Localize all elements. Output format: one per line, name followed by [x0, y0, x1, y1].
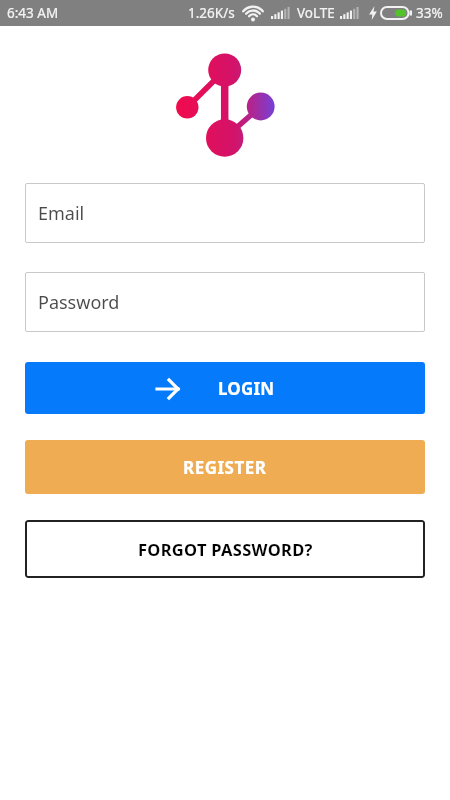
staticText: FORGOT PASSWORD?: [138, 538, 313, 560]
button[interactable]: FORGOT PASSWORD?: [25, 520, 425, 578]
button[interactable]: Email: [25, 183, 425, 243]
staticText: Email: [38, 201, 85, 226]
button[interactable]: LOGIN: [25, 362, 425, 414]
button[interactable]: Password: [25, 272, 425, 332]
staticText: REGISTER: [183, 456, 267, 479]
staticText: 1.26K/s: [188, 4, 235, 22]
staticText: LOGIN: [218, 377, 275, 400]
staticText: VoLTE: [297, 4, 335, 22]
staticText: 33%: [416, 4, 443, 22]
button[interactable]: REGISTER: [25, 440, 425, 494]
staticText: Password: [38, 290, 120, 315]
staticText: 6:43 AM: [7, 4, 59, 22]
